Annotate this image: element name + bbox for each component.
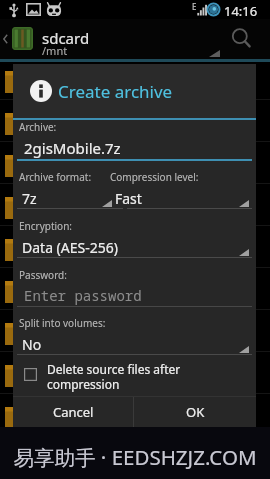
staticText: Create archive bbox=[58, 80, 173, 103]
staticText: sdcard bbox=[42, 28, 90, 48]
staticText: /mnt bbox=[42, 43, 68, 58]
staticText: Fast bbox=[115, 189, 142, 208]
button[interactable]: Up bbox=[0, 19, 10, 59]
staticText: No bbox=[22, 335, 42, 354]
staticText: Archive format: bbox=[19, 170, 92, 184]
button[interactable]: Delete source files after compression bbox=[17, 360, 242, 396]
button[interactable]: Search bbox=[228, 23, 268, 59]
staticText: Delete source files after compression bbox=[47, 361, 181, 392]
staticText: Split into volumes: bbox=[19, 316, 106, 330]
staticText: 14:16 bbox=[224, 2, 258, 20]
button[interactable]: Cancel bbox=[13, 397, 133, 427]
staticText: Compression level: bbox=[110, 170, 199, 184]
staticText: Archive: bbox=[19, 120, 57, 134]
staticText: Encryption: bbox=[19, 219, 73, 233]
staticText: Cancel bbox=[53, 403, 94, 421]
staticText: OK bbox=[186, 403, 205, 421]
staticText: 易享助手 · EEDSHZJZ.COM bbox=[13, 443, 257, 471]
staticText: Data (AES-256) bbox=[22, 238, 118, 257]
staticText: 2gisMobile.7z bbox=[24, 138, 121, 158]
button[interactable]: OK bbox=[134, 397, 256, 427]
staticText: Password: bbox=[19, 268, 67, 282]
staticText: E bbox=[192, 1, 197, 12]
button[interactable]: Sort bbox=[202, 29, 227, 59]
staticText: Enter password bbox=[24, 286, 142, 305]
staticText: 7z bbox=[22, 189, 37, 208]
